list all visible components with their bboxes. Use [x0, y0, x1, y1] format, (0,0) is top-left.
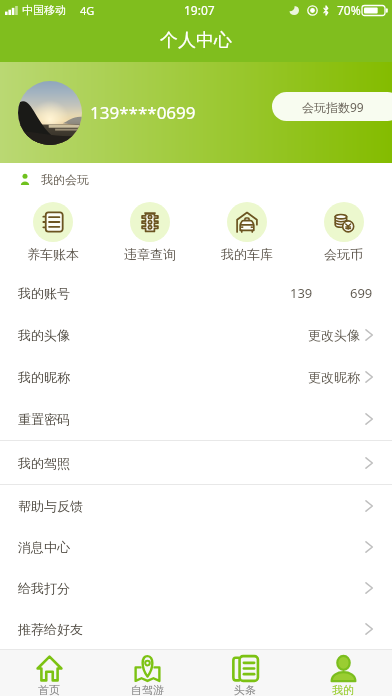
- staticText: 我的昵称: [18, 369, 70, 385]
- staticText: 养车账本: [27, 246, 79, 262]
- staticText: 699: [350, 284, 373, 302]
- button[interactable]: 我的车库: [198, 195, 295, 272]
- button[interactable]: 我的会玩: [0, 163, 392, 195]
- button[interactable]: 我的: [294, 650, 392, 696]
- button[interactable]: 我的头像: [0, 314, 392, 356]
- staticText: 重置密码: [18, 411, 70, 427]
- staticText: 个人中心: [160, 29, 232, 52]
- staticText: 更改昵称: [308, 369, 360, 385]
- staticText: 头条: [234, 683, 256, 696]
- staticText: 我的头像: [18, 327, 70, 343]
- staticText: 4G: [80, 3, 95, 18]
- staticText: 首页: [38, 683, 60, 696]
- staticText: 我的账号: [18, 285, 70, 301]
- button[interactable]: 推荐给好友: [0, 608, 392, 649]
- button[interactable]: 给我打分: [0, 567, 392, 608]
- button[interactable]: 消息中心: [0, 526, 392, 567]
- staticText: 我的: [332, 683, 354, 696]
- staticText: 消息中心: [18, 539, 70, 555]
- staticText: 更改头像: [308, 327, 360, 343]
- staticText: 会玩指数99: [302, 99, 364, 115]
- button[interactable]: 首页: [0, 650, 98, 696]
- staticText: 帮助与反馈: [18, 498, 83, 514]
- staticText: 推荐给好友: [18, 621, 83, 637]
- staticText: 我的会玩: [41, 172, 89, 187]
- button[interactable]: 自驾游: [98, 650, 196, 696]
- button[interactable]: 重置密码: [0, 398, 392, 440]
- button[interactable]: 养车账本: [4, 195, 101, 272]
- staticText: 我的车库: [221, 246, 273, 262]
- button[interactable]: 我的驾照: [0, 441, 392, 484]
- staticText: 自驾游: [131, 683, 164, 696]
- staticText: 19:07: [184, 2, 215, 18]
- button[interactable]: Avatar: [18, 81, 82, 145]
- button[interactable]: 我的账号: [0, 272, 392, 314]
- staticText: 中国移动: [22, 3, 66, 17]
- button[interactable]: 违章查询: [101, 195, 198, 272]
- staticText: 139: [290, 284, 313, 302]
- staticText: 会玩币: [324, 246, 363, 262]
- button[interactable]: 帮助与反馈: [0, 485, 392, 526]
- staticText: 70%: [337, 2, 361, 18]
- staticText: 给我打分: [18, 580, 70, 596]
- staticText: 139****0699: [90, 101, 196, 124]
- button[interactable]: 我的昵称: [0, 356, 392, 398]
- button[interactable]: 会玩指数99: [272, 92, 392, 121]
- button[interactable]: 头条: [196, 650, 294, 696]
- staticText: 我的驾照: [18, 455, 70, 471]
- button[interactable]: 会玩币: [295, 195, 392, 272]
- staticText: 违章查询: [124, 246, 176, 262]
